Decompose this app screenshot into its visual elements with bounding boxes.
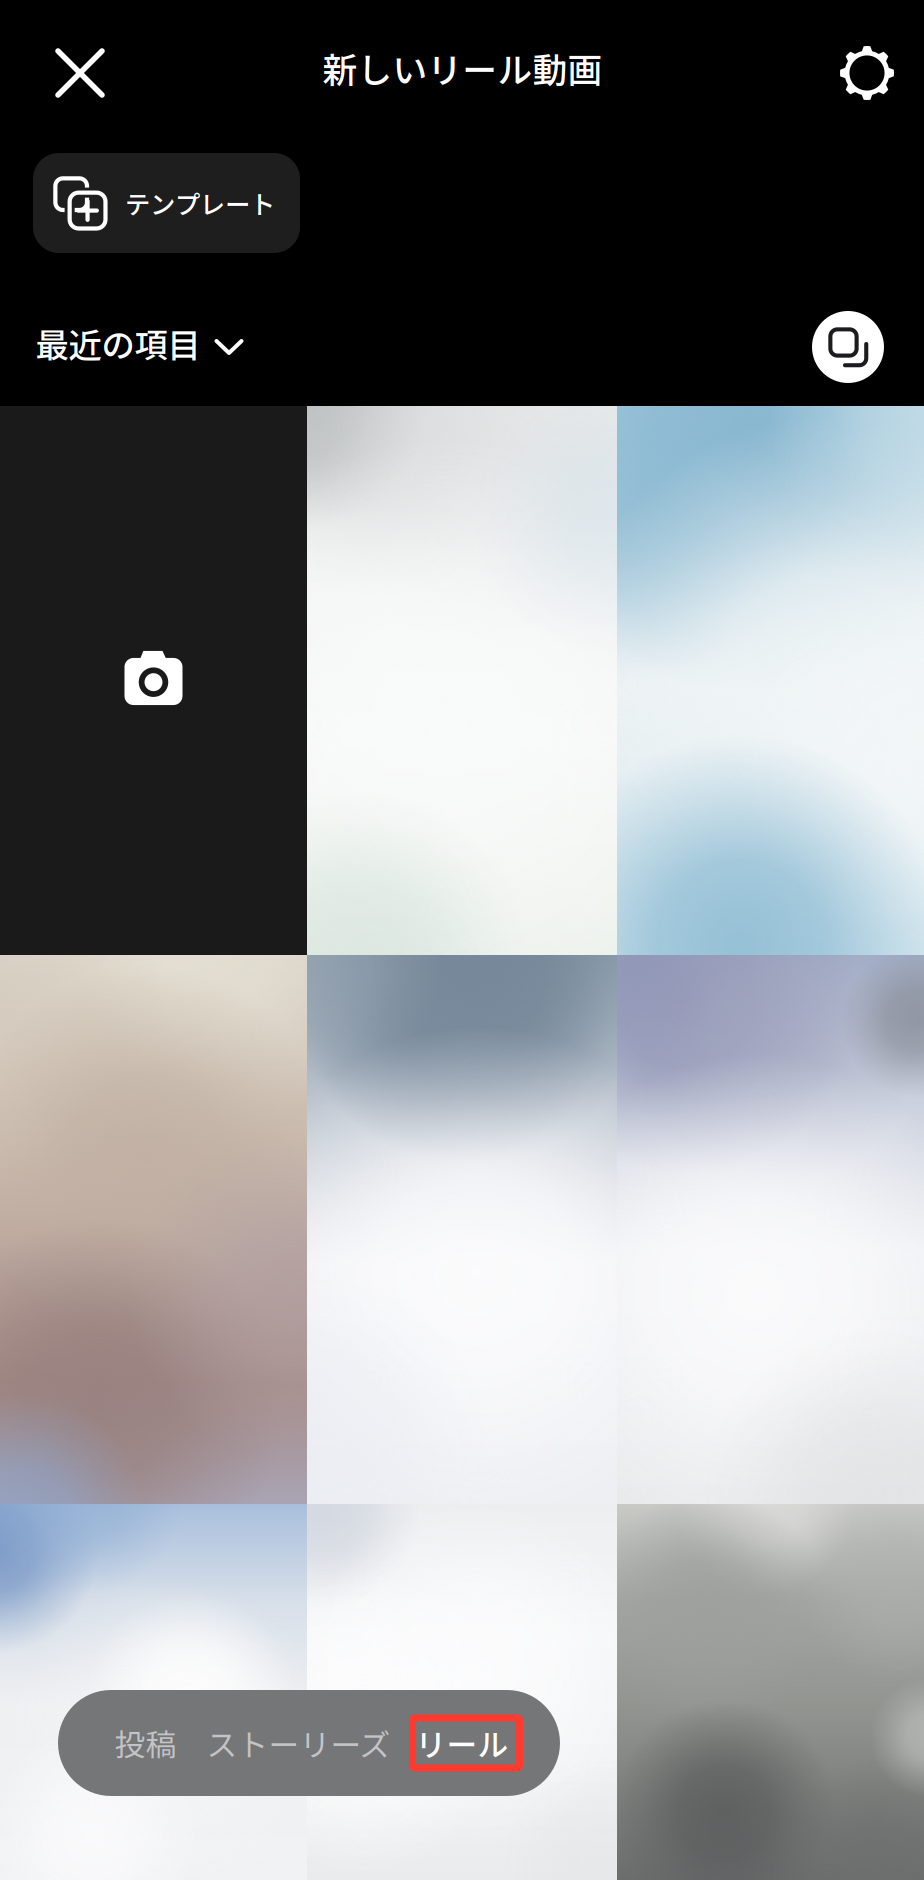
button[interactable]: リール	[405, 1690, 519, 1796]
staticText: ストーリーズ	[206, 1721, 390, 1765]
button[interactable]: ストーリーズ	[192, 1690, 405, 1796]
staticText: テンプレート	[125, 185, 275, 221]
button[interactable]: Settings	[819, 25, 915, 121]
staticText: リール	[415, 1721, 508, 1765]
staticText: 新しいリール動画	[322, 43, 602, 93]
button[interactable]: Select multiple	[800, 299, 896, 395]
staticText: 最近の項目	[35, 319, 200, 367]
button[interactable]: テンプレート	[33, 153, 300, 253]
staticText: 投稿	[114, 1721, 176, 1765]
button[interactable]: 最近の項目	[21, 302, 255, 384]
button[interactable]: Close	[32, 25, 128, 121]
button[interactable]: 投稿	[99, 1690, 192, 1796]
